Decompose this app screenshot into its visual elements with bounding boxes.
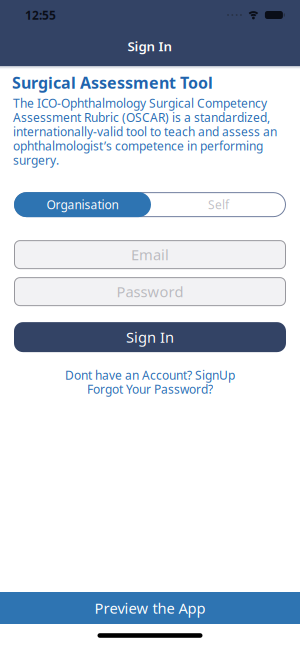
- staticText: ophthalmologist’s competence in performi…: [13, 138, 263, 154]
- button[interactable]: Self: [151, 192, 286, 217]
- button[interactable]: Dont have an Account? SignUp: [65, 367, 235, 383]
- staticText: Forgot Your Password?: [87, 381, 213, 397]
- staticText: Preview the App: [94, 598, 205, 618]
- button[interactable]: Forgot Your Password?: [87, 381, 213, 397]
- staticText: 12:55: [25, 7, 56, 23]
- staticText: The ICO-Ophthalmology Surgical Competenc…: [13, 95, 267, 111]
- button[interactable]: Email: [14, 240, 286, 269]
- staticText: Assessment Rubric (OSCAR) is a standardi…: [13, 109, 270, 125]
- staticText: Email: [131, 245, 169, 264]
- staticText: Sign In: [127, 37, 172, 55]
- staticText: internationally-valid tool to teach and …: [13, 124, 277, 140]
- button[interactable]: Organisation: [14, 192, 151, 217]
- staticText: Dont have an Account? SignUp: [65, 367, 235, 383]
- staticText: Sign In: [126, 327, 174, 347]
- button[interactable]: Preview the App: [0, 592, 300, 624]
- button[interactable]: Password: [14, 277, 286, 306]
- button[interactable]: Sign In: [14, 322, 286, 352]
- staticText: Surgical Assessment Tool: [12, 72, 213, 93]
- staticText: Organisation: [46, 197, 118, 213]
- staticText: surgery.: [13, 152, 59, 168]
- staticText: Self: [208, 197, 229, 213]
- staticText: Password: [116, 282, 183, 301]
